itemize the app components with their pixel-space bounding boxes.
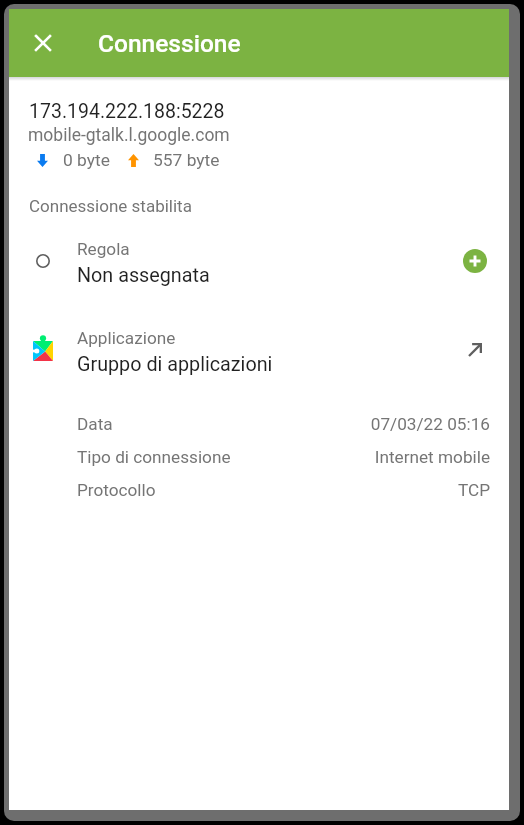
staticText: 07/03/22 05:16: [370, 414, 490, 434]
button[interactable]: Applicazione: [9, 322, 509, 378]
staticText: Internet mobile: [374, 447, 490, 467]
staticText: Connessione stabilita: [29, 196, 192, 216]
staticText: Non assegnata: [77, 264, 210, 287]
staticText: 557 byte: [153, 150, 220, 170]
staticText: Data: [77, 414, 113, 434]
staticText: 173.194.222.188:5228: [29, 100, 225, 123]
button[interactable]: Chiudi: [19, 19, 67, 67]
button[interactable]: Apri applicazione: [453, 328, 497, 372]
staticText: TCP: [457, 480, 490, 500]
staticText: Tipo di connessione: [77, 447, 231, 467]
staticText: 0 byte: [63, 150, 110, 170]
staticText: Connessione: [98, 29, 241, 58]
staticText: Regola: [77, 239, 130, 259]
button[interactable]: Regola: [9, 233, 509, 289]
staticText: mobile-gtalk.l.google.com: [28, 125, 230, 146]
staticText: Applicazione: [77, 328, 176, 348]
button[interactable]: Aggiungi regola: [453, 239, 497, 283]
staticText: Gruppo di applicazioni: [77, 353, 273, 376]
staticText: Protocollo: [77, 480, 156, 500]
